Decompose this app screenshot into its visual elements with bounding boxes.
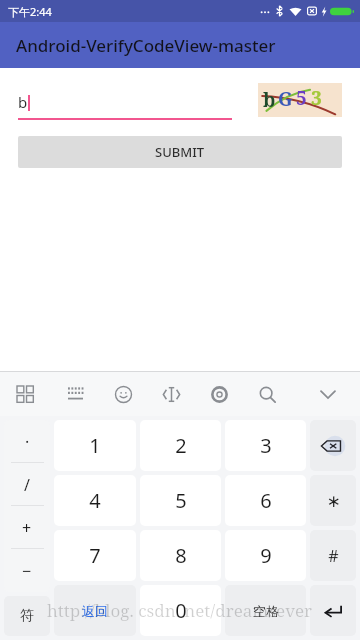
staticText: 6: [260, 487, 272, 514]
staticText: 4: [89, 487, 101, 514]
button[interactable]: 空格: [225, 585, 306, 636]
button[interactable]: ·: [4, 420, 50, 463]
button[interactable]: 1: [54, 420, 136, 471]
button[interactable]: Backspace: [310, 420, 356, 471]
button[interactable]: 7: [54, 530, 136, 581]
staticText: 返回: [82, 603, 108, 619]
staticText: b: [263, 87, 276, 113]
staticText: 符: [20, 607, 34, 625]
staticText: http://blog. csdn. net/dreamsever: [47, 599, 313, 622]
staticText: 0: [175, 597, 187, 624]
staticText: 下午2:44: [8, 4, 52, 19]
staticText: #: [328, 545, 339, 567]
staticText: 5: [296, 85, 307, 111]
staticText: G: [278, 86, 293, 112]
button[interactable]: Hide keyboard: [318, 384, 338, 404]
button[interactable]: #: [310, 530, 356, 581]
staticText: 3: [260, 432, 272, 459]
button[interactable]: Apps: [14, 383, 36, 405]
button[interactable]: +: [4, 506, 50, 549]
staticText: 8: [175, 542, 187, 569]
button[interactable]: Search: [256, 383, 278, 405]
staticText: ·: [25, 431, 30, 453]
staticText: 7: [89, 542, 101, 569]
button[interactable]: Emoji: [112, 383, 134, 405]
button[interactable]: 9: [225, 530, 306, 581]
button[interactable]: 5: [140, 475, 221, 526]
button[interactable]: 4: [54, 475, 136, 526]
staticText: 3: [311, 85, 322, 111]
button[interactable]: Enter: [310, 585, 356, 636]
button[interactable]: 8: [140, 530, 221, 581]
button[interactable]: ∗: [310, 475, 356, 526]
button[interactable]: 3: [225, 420, 306, 471]
staticText: 空格: [253, 603, 279, 619]
button[interactable]: /: [4, 463, 50, 506]
staticText: −: [22, 560, 32, 582]
button[interactable]: 0: [140, 585, 221, 636]
button[interactable]: Text cursor: [160, 383, 182, 405]
button[interactable]: −: [4, 549, 50, 592]
button[interactable]: 符: [4, 596, 50, 636]
button[interactable]: SUBMIT: [18, 136, 342, 168]
button[interactable]: 2: [140, 420, 221, 471]
staticText: ∗: [326, 491, 341, 511]
staticText: SUBMIT: [155, 143, 205, 161]
staticText: 2: [175, 432, 187, 459]
staticText: Android-VerifyCodeView-master: [16, 34, 276, 57]
button[interactable]: b: [18, 80, 232, 120]
staticText: 5: [175, 487, 187, 514]
staticText: +: [22, 517, 32, 539]
button[interactable]: Settings: [208, 383, 230, 405]
staticText: 1: [89, 432, 101, 459]
staticText: /: [24, 474, 30, 496]
button[interactable]: Keyboard: [64, 383, 86, 405]
button[interactable]: 6: [225, 475, 306, 526]
staticText: 9: [260, 542, 272, 569]
staticText: b: [18, 92, 28, 112]
button[interactable]: Verification code image: [258, 83, 342, 117]
button[interactable]: 返回: [54, 585, 136, 636]
